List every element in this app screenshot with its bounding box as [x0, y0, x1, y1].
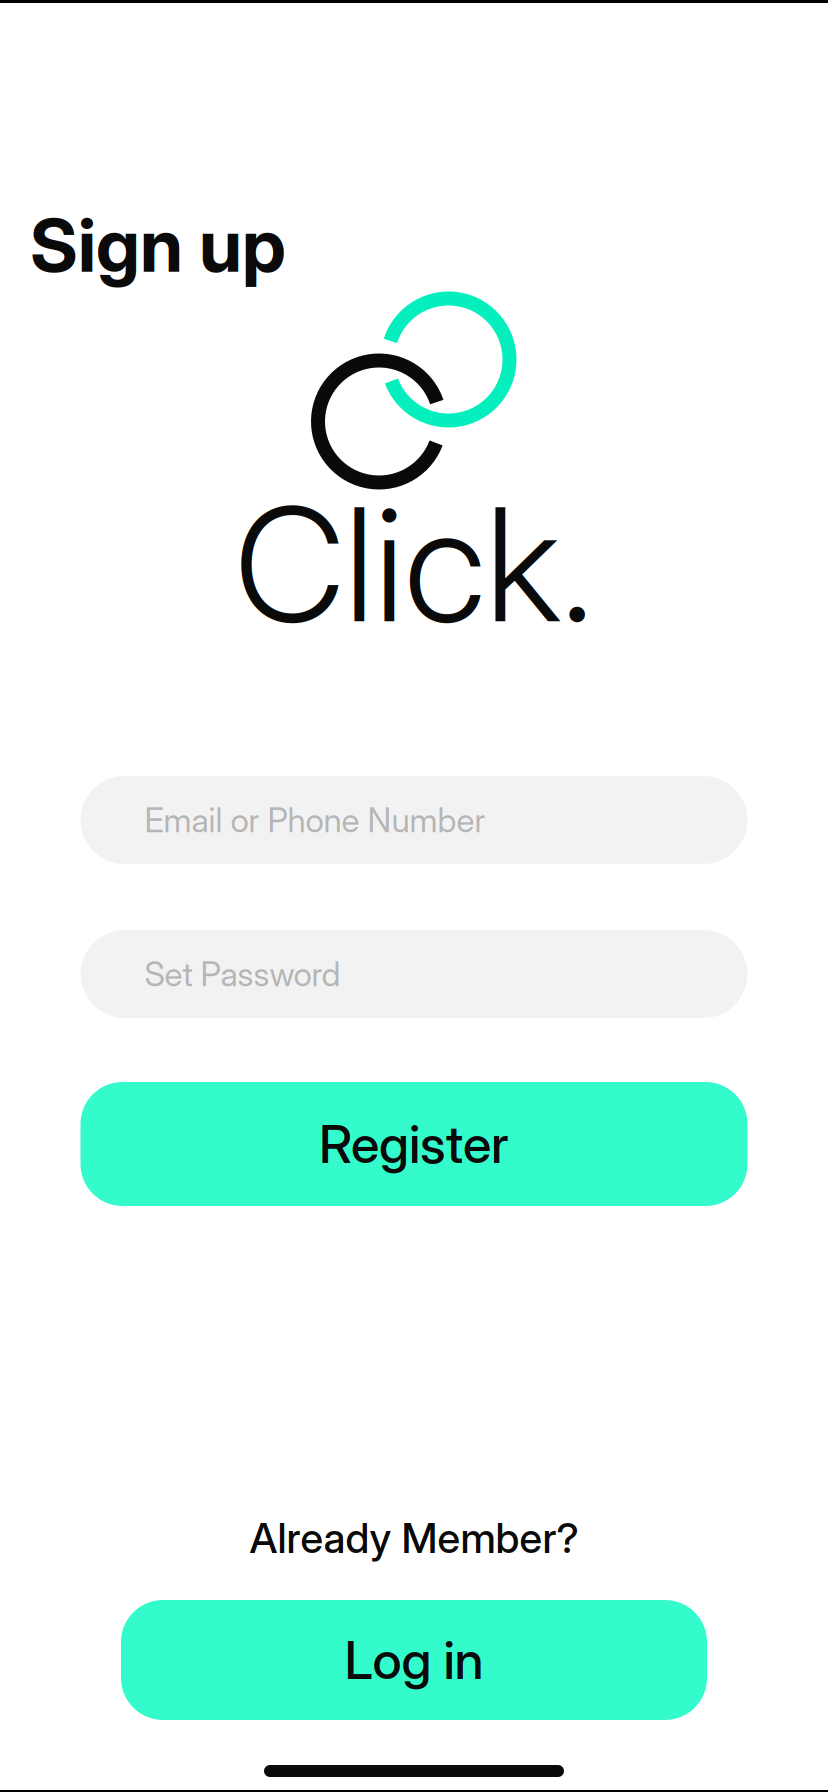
button[interactable]: Set Password — [80, 930, 747, 1018]
staticText: Sign up — [30, 201, 286, 289]
staticText: Email or Phone Number — [144, 800, 485, 840]
staticText: Click. — [234, 469, 593, 659]
staticText: Set Password — [144, 954, 340, 994]
button[interactable]: Log in — [121, 1600, 707, 1720]
button[interactable]: Email or Phone Number — [80, 776, 747, 864]
button[interactable]: Register — [80, 1082, 747, 1206]
staticText: Already Member? — [249, 1513, 578, 1563]
staticText: Register — [319, 1112, 509, 1175]
staticText: Log in — [344, 1628, 483, 1691]
